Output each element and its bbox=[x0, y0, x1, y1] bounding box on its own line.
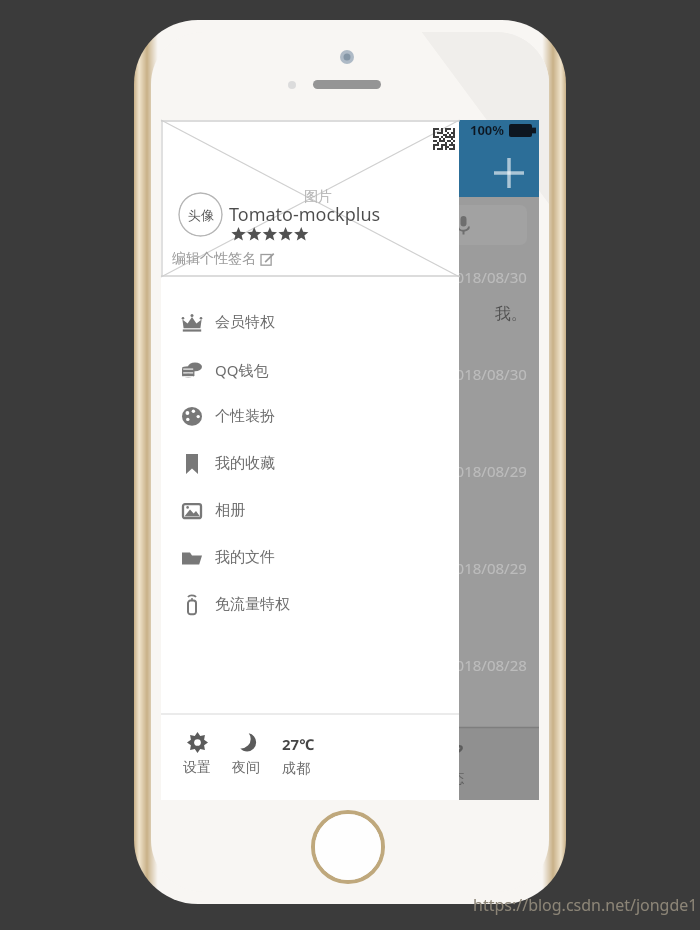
other: Voice bbox=[457, 216, 470, 235]
staticText: 2018/08/28 bbox=[447, 655, 527, 675]
button[interactable]: 二维码 bbox=[433, 128, 455, 150]
staticText: 免流量特权 bbox=[215, 595, 290, 614]
staticText: 编辑个性签名 bbox=[172, 250, 256, 268]
staticText: 头像 bbox=[188, 207, 214, 223]
button[interactable]: 2018/08/29 bbox=[161, 558, 539, 655]
button[interactable]: 我的收藏 bbox=[161, 440, 459, 487]
button[interactable]: 编辑个性签名 bbox=[172, 250, 274, 268]
staticText: https://blog.csdn.net/jongde1 bbox=[473, 894, 698, 916]
button[interactable]: 免流量特权 bbox=[161, 581, 459, 628]
staticText: 相册 bbox=[215, 501, 245, 520]
staticText: Tomato-mockplus bbox=[229, 202, 381, 227]
button[interactable]: 我的文件 bbox=[161, 534, 459, 581]
staticText: 设置 bbox=[183, 759, 211, 777]
staticText: 夜间 bbox=[232, 759, 260, 777]
staticText: 我的文件 bbox=[215, 548, 275, 567]
staticText: 动态 bbox=[436, 770, 464, 788]
button[interactable]: 夜间 bbox=[232, 732, 260, 777]
button[interactable]: Voice bbox=[169, 205, 527, 245]
staticText: 会员特权 bbox=[215, 313, 275, 332]
button[interactable]: 相册 bbox=[161, 487, 459, 534]
button[interactable]: 图片 bbox=[161, 120, 459, 277]
button[interactable]: 会员特权 bbox=[161, 299, 459, 346]
staticText: QQ钱包 bbox=[215, 360, 269, 380]
staticText: 我的收藏 bbox=[215, 454, 275, 473]
staticText: 图片 bbox=[304, 188, 332, 206]
staticText: 成都 bbox=[282, 760, 310, 778]
button[interactable]: Add bbox=[493, 157, 525, 189]
staticText: 个性装扮 bbox=[215, 407, 275, 426]
button[interactable]: QQ钱包 bbox=[161, 346, 459, 393]
button[interactable]: 2018/08/30 bbox=[161, 267, 539, 364]
button[interactable]: 2018/08/30 bbox=[161, 364, 539, 461]
button[interactable]: 设置 bbox=[183, 732, 211, 777]
staticText: 2018/08/30 bbox=[447, 364, 527, 384]
staticText: 2018/08/29 bbox=[447, 461, 527, 481]
staticText: 100% bbox=[470, 121, 505, 139]
staticText: 27℃ bbox=[282, 734, 315, 754]
button[interactable]: 头像 bbox=[178, 192, 223, 237]
button[interactable]: 个性装扮 bbox=[161, 393, 459, 440]
staticText: 我。 bbox=[495, 304, 527, 324]
button[interactable]: 动态 bbox=[436, 740, 464, 788]
button[interactable]: 2018/08/28 bbox=[161, 655, 539, 727]
button[interactable]: 2018/08/29 bbox=[161, 461, 539, 558]
button[interactable]: 27℃ bbox=[282, 732, 315, 778]
staticText: 2018/08/30 bbox=[447, 267, 527, 287]
staticText: 2018/08/29 bbox=[447, 558, 527, 578]
